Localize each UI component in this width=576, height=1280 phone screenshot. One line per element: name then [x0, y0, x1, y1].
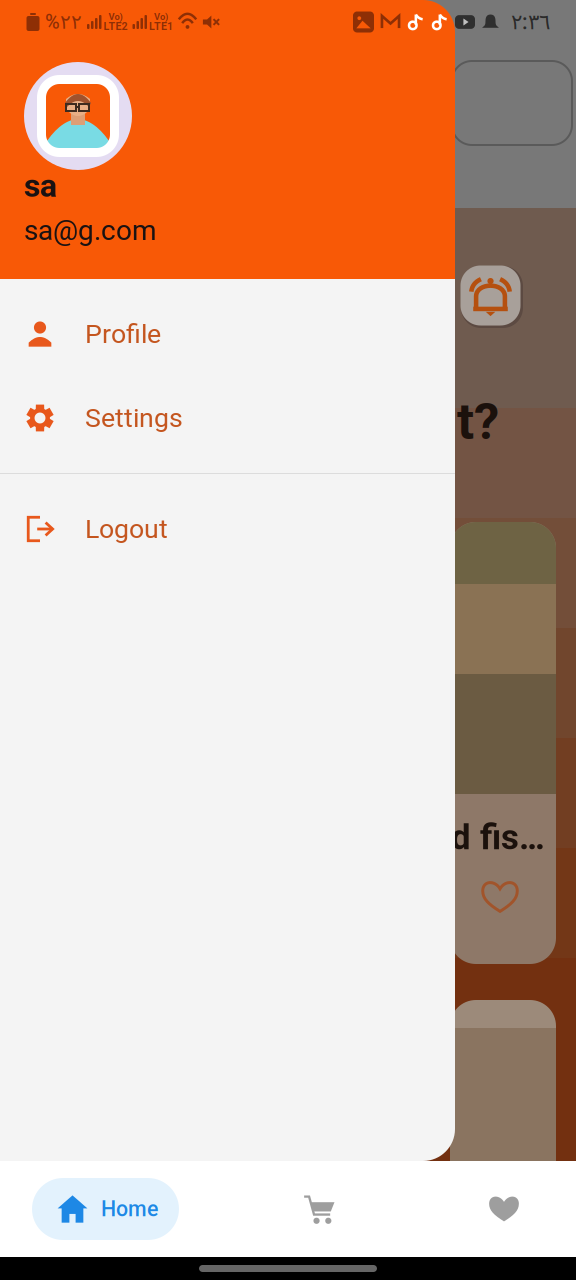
staticText: LTE2 — [103, 20, 127, 33]
staticText: ٢:٣٦ — [511, 9, 550, 34]
button[interactable]: Settings — [0, 376, 455, 460]
button[interactable]: Profile — [0, 292, 455, 376]
button[interactable]: Home — [32, 1178, 179, 1240]
staticText: Vo) — [154, 11, 168, 22]
staticText: sa@g.com — [24, 214, 157, 247]
staticText: Settings — [85, 402, 183, 434]
staticText: LTE1 — [149, 20, 173, 33]
button[interactable]: Logout — [0, 487, 455, 571]
staticText: Logout — [85, 513, 168, 545]
staticText: Profile — [85, 318, 161, 350]
staticText: %٢٢ — [45, 10, 82, 34]
staticText: Vo) — [108, 11, 122, 22]
staticText: d fis… — [451, 817, 545, 858]
button[interactable]: Cart — [288, 1178, 350, 1240]
staticText: Home — [101, 1196, 158, 1221]
staticText: sa — [24, 167, 57, 204]
button[interactable]: Favorites — [473, 1178, 535, 1240]
staticText: t? — [457, 392, 499, 451]
